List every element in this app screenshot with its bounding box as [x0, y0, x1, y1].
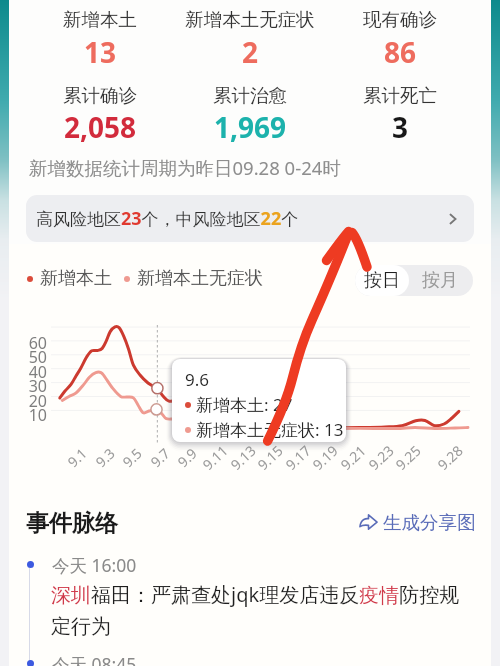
staticText: 9.19	[304, 437, 346, 478]
staticText: 9.5	[111, 437, 153, 478]
staticText: 累计治愈	[175, 84, 325, 107]
staticText: 累计死亡	[325, 84, 475, 107]
staticText: 9.25	[387, 437, 429, 478]
staticText: 生成分享图	[383, 511, 476, 534]
staticText: 10	[22, 404, 47, 426]
staticText: 9.11	[194, 437, 236, 478]
staticText: 9.6	[185, 368, 210, 391]
staticText: 深圳福田：严肃查处jqk理发店违反疫情防控规定行为	[51, 581, 473, 639]
staticText: 新增本土	[40, 267, 112, 290]
staticText: 9.9	[166, 437, 208, 478]
staticText: 20	[22, 390, 47, 412]
button[interactable]: 按日	[355, 265, 409, 296]
staticText: 2	[175, 33, 325, 71]
staticText: 事件脉络	[26, 509, 118, 538]
staticText: 高风险地区23个，中风险地区22个	[36, 206, 299, 231]
staticText: 新增本土无症状	[137, 267, 263, 290]
staticText: 按日	[364, 269, 400, 292]
staticText: 今天 16:00	[52, 553, 137, 577]
staticText: 13	[25, 33, 175, 71]
staticText: 1,969	[175, 108, 325, 146]
staticText: 9.15	[249, 437, 291, 478]
staticText: 9.23	[360, 437, 402, 478]
staticText: 9.28	[429, 437, 471, 478]
button[interactable]: 生成分享图	[357, 509, 478, 536]
staticText: 30	[22, 375, 47, 397]
staticText: 50	[22, 346, 47, 368]
staticText: 60	[22, 332, 47, 354]
staticText: 新增数据统计周期为昨日09.28 0-24时	[29, 155, 341, 180]
staticText: 40	[22, 361, 47, 383]
staticText: 9.7	[139, 437, 181, 478]
staticText: 3	[325, 108, 475, 146]
staticText: 新增本土: 27	[196, 393, 293, 416]
staticText: 新增本土无症状: 13	[196, 418, 344, 441]
staticText: 累计确诊	[25, 84, 175, 107]
staticText: 按月	[422, 269, 458, 292]
staticText: 2,058	[25, 108, 175, 146]
staticText: 9.3	[84, 437, 126, 478]
staticText: 新增本土无症状	[175, 8, 325, 31]
staticText: 86	[325, 33, 475, 71]
staticText: 9.17	[277, 437, 319, 478]
staticText: 9.1	[56, 437, 98, 478]
staticText: 今天 08:45	[52, 652, 137, 666]
button[interactable]: 按月	[409, 265, 471, 296]
staticText: 9.21	[332, 437, 374, 478]
staticText: 现有确诊	[325, 8, 475, 31]
staticText: 新增本土	[25, 8, 175, 31]
staticText: 9.13	[222, 437, 264, 478]
button[interactable]: 高风险地区23个，中风险地区22个	[26, 195, 474, 242]
